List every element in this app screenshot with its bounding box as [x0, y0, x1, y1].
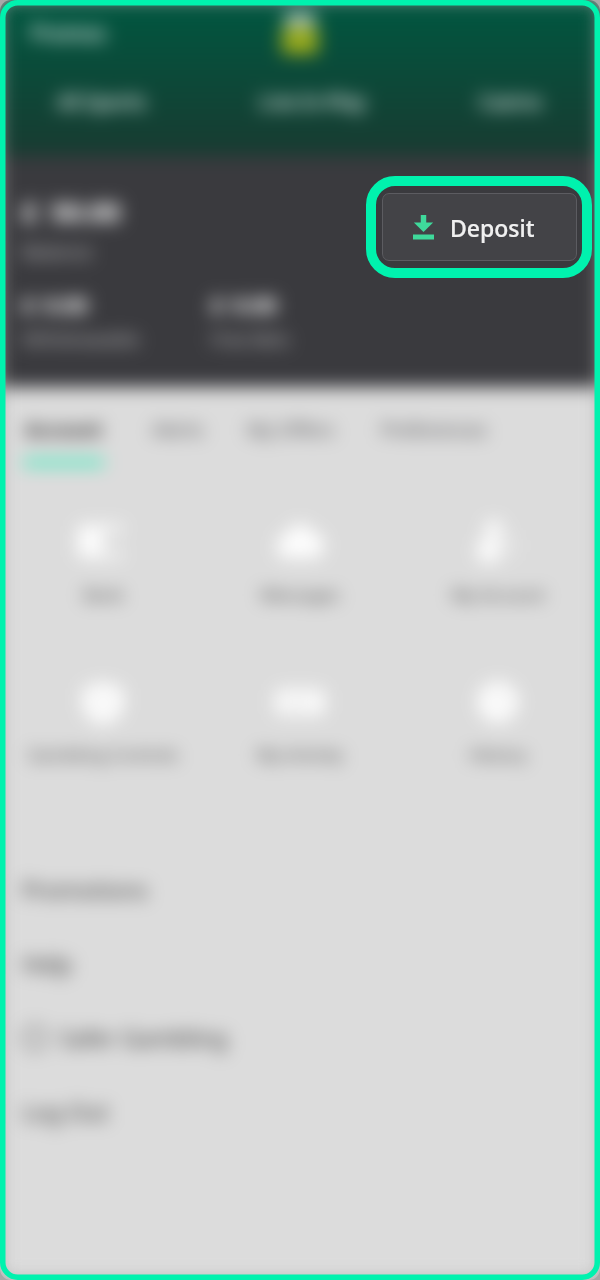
staticText: Deposit [450, 212, 535, 243]
button[interactable]: £ [22, 193, 121, 265]
button[interactable]: Bank [8, 510, 198, 606]
button[interactable]: Log Out [0, 1074, 600, 1148]
staticText: My Activity [257, 743, 343, 766]
button[interactable]: Promotions [0, 852, 600, 926]
staticText: Log Out [22, 1096, 109, 1127]
staticText: Preferences [381, 417, 487, 443]
staticText: Help [22, 948, 73, 979]
staticText: £ [22, 193, 38, 230]
staticText: Free Bets [211, 327, 290, 352]
button[interactable]: My Offers [228, 387, 354, 460]
button[interactable]: Safer Gambling [0, 1000, 600, 1074]
staticText: 0.00 [44, 289, 88, 319]
button[interactable]: History [403, 670, 593, 766]
staticText: Messages [260, 583, 340, 606]
staticText: Account [25, 417, 103, 443]
staticText: Bank [83, 583, 124, 606]
staticText: £ [22, 289, 35, 319]
button[interactable]: Alerts [127, 387, 228, 460]
staticText: 0.00 [233, 289, 277, 319]
staticText: History [469, 743, 527, 766]
button[interactable]: Promos [26, 15, 111, 52]
staticText: 50.00 [51, 193, 121, 230]
button[interactable]: Deposit [382, 193, 577, 261]
button[interactable]: My Account [403, 510, 593, 606]
button[interactable]: Gambling Controls [8, 670, 198, 766]
staticText: Alerts [152, 417, 204, 443]
staticText: Promos [30, 19, 107, 48]
staticText: Live In-Play [259, 88, 366, 115]
staticText: £ [211, 289, 224, 319]
button[interactable]: My Activity [205, 670, 395, 766]
staticText: Withdrawable [22, 327, 140, 352]
staticText: My Offers [247, 417, 335, 443]
button[interactable]: Messages [205, 510, 395, 606]
button[interactable]: £ [22, 289, 140, 352]
button[interactable]: Preferences [354, 387, 513, 460]
staticText: My Account [451, 583, 545, 606]
button[interactable]: Help [0, 926, 600, 1000]
button[interactable]: Casino [467, 80, 555, 123]
staticText: Safer Gambling [60, 1022, 228, 1053]
other: Logo [274, 10, 326, 54]
button[interactable]: Live In-Play [247, 80, 378, 123]
button[interactable]: Account [0, 387, 127, 465]
staticText: All Sports [57, 88, 146, 115]
staticText: Casino [479, 88, 543, 115]
staticText: Balance [22, 239, 93, 265]
staticText: Gambling Controls [28, 743, 178, 766]
button[interactable]: All Sports [45, 80, 158, 123]
button[interactable]: £ [211, 289, 290, 352]
staticText: Promotions [22, 874, 148, 905]
